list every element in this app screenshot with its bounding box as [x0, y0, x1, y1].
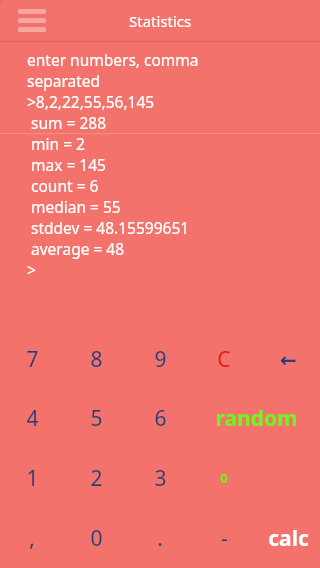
staticText: C	[217, 345, 231, 374]
staticText: 5	[90, 404, 103, 433]
button[interactable]: 4	[0, 389, 64, 448]
button[interactable]: .	[128, 508, 192, 568]
staticText: 7	[26, 345, 39, 374]
button[interactable]: 3	[128, 448, 192, 508]
staticText: 2	[90, 464, 103, 493]
staticText: random	[215, 404, 298, 433]
button[interactable]: -	[192, 508, 256, 568]
staticText: >8,2,22,55,56,145	[27, 91, 320, 112]
button[interactable]: Clear	[192, 330, 256, 389]
staticText: 8	[90, 345, 103, 374]
button[interactable]: 7	[0, 330, 64, 389]
staticText: ,	[29, 524, 35, 553]
staticText: ←	[280, 348, 297, 371]
staticText: 0	[90, 524, 103, 553]
button[interactable]: 0	[192, 448, 256, 508]
button[interactable]: 5	[64, 389, 128, 448]
staticText: 0	[220, 469, 228, 487]
button[interactable]: Backspace	[256, 330, 320, 389]
button[interactable]: 1	[0, 448, 64, 508]
staticText: enter numbers, comma	[27, 49, 320, 70]
button[interactable]: 0	[64, 508, 128, 568]
staticText: count = 6	[27, 175, 320, 196]
staticText: max = 145	[27, 154, 320, 175]
staticText: min = 2	[27, 133, 320, 154]
staticText: Statistics	[129, 11, 192, 31]
staticText: calc	[268, 524, 309, 553]
staticText: average = 48	[27, 238, 320, 259]
staticText: sum = 288	[27, 112, 320, 133]
staticText: 3	[154, 464, 167, 493]
staticText: stddev = 48.15599651	[27, 217, 320, 238]
button[interactable]: 2	[64, 448, 128, 508]
staticText: 9	[154, 345, 167, 374]
staticText: >	[27, 259, 320, 280]
staticText: 6	[154, 404, 167, 433]
staticText: 4	[26, 404, 39, 433]
button[interactable]: 6	[128, 389, 192, 448]
staticText: -	[221, 524, 228, 553]
button[interactable]: random	[192, 389, 320, 448]
staticText: 1	[26, 464, 39, 493]
button[interactable]: Open navigation drawer	[8, 0, 56, 41]
button[interactable]: 8	[64, 330, 128, 389]
staticText: median = 55	[27, 196, 320, 217]
button[interactable]: calc	[256, 508, 320, 568]
button[interactable]: 9	[128, 330, 192, 389]
staticText: separated	[27, 70, 320, 91]
staticText: .	[157, 524, 163, 553]
button[interactable]: ,	[0, 508, 64, 568]
